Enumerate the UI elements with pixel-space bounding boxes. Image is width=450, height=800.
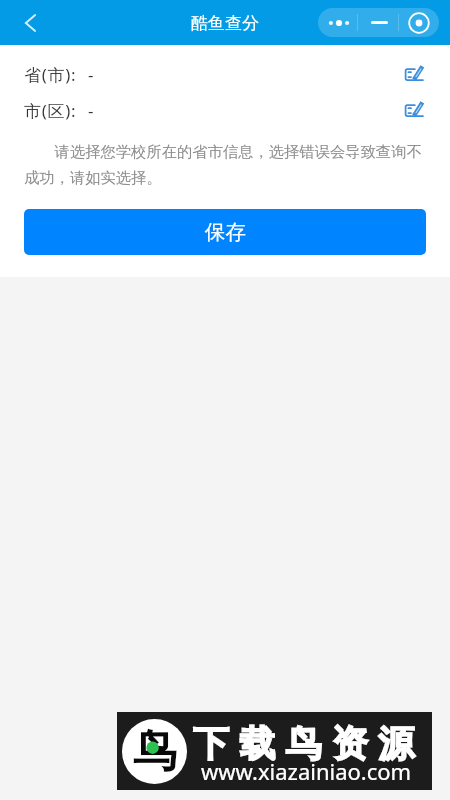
staticText: - bbox=[88, 99, 94, 122]
staticText: 鸟 bbox=[133, 724, 177, 779]
staticText: 酷鱼查分 bbox=[191, 13, 259, 34]
staticText: www.xiazainiao.com bbox=[201, 756, 412, 786]
button[interactable]: 保存 bbox=[24, 209, 426, 255]
button[interactable]: 省(市): bbox=[0, 56, 450, 92]
button[interactable]: Minimize bbox=[358, 8, 398, 37]
button[interactable]: Close bbox=[399, 8, 439, 37]
button[interactable]: Edit bbox=[404, 64, 424, 84]
button[interactable]: Back bbox=[0, 0, 60, 45]
button[interactable]: More bbox=[318, 8, 357, 37]
staticText: 请选择您学校所在的省市信息，选择错误会导致查询不 成功，请如实选择。 bbox=[24, 141, 434, 187]
button[interactable]: 市(区): bbox=[0, 92, 450, 128]
button[interactable]: Edit bbox=[404, 100, 424, 120]
staticText: 市(区): bbox=[24, 99, 77, 122]
staticText: - bbox=[88, 63, 94, 86]
staticText: 省(市): bbox=[24, 63, 77, 86]
staticText: 保存 bbox=[205, 219, 246, 245]
staticText: 下载鸟资源 bbox=[188, 721, 419, 766]
